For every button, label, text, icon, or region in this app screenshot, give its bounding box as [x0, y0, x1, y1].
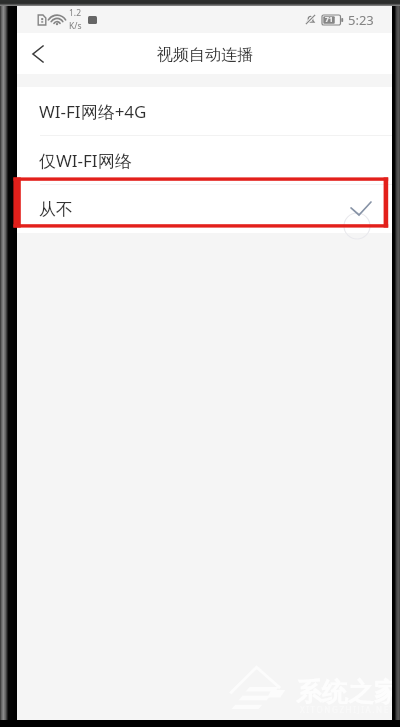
- staticText: K/s: [69, 20, 82, 32]
- button[interactable]: 从不: [17, 185, 392, 233]
- staticText: 5:23: [348, 11, 374, 29]
- staticText: 视频自动连播: [157, 45, 253, 65]
- staticText: 仅WI-FI网络: [39, 149, 132, 172]
- staticText: 从不: [39, 199, 73, 220]
- staticText: 71: [325, 15, 334, 25]
- staticText: 系统之家: [296, 676, 400, 709]
- staticText: XITONGZHIJIA.NET: [300, 704, 396, 715]
- button[interactable]: WI-FI网络+4G: [17, 87, 392, 135]
- staticText: 1.2: [69, 7, 82, 19]
- button[interactable]: Back: [20, 36, 56, 72]
- staticText: WI-FI网络+4G: [39, 100, 147, 123]
- button[interactable]: 仅WI-FI网络: [17, 136, 392, 184]
